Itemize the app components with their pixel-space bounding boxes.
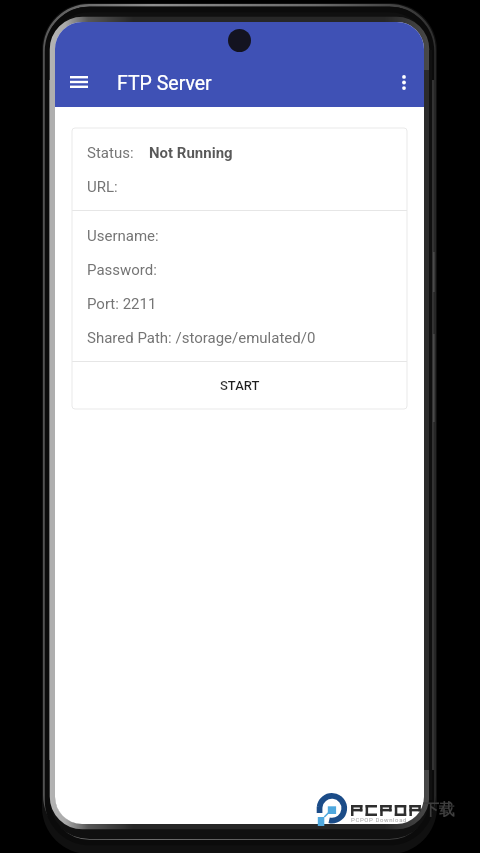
button[interactable]: Open navigation menu (59, 63, 99, 103)
staticText: 下载 (423, 800, 455, 820)
staticText: URL: (87, 178, 118, 196)
staticText: Shared Path: /storage/emulated/0 (87, 329, 316, 347)
staticText: Not Running (149, 144, 233, 162)
staticText: Username: (87, 227, 159, 245)
staticText: Status: (87, 144, 134, 162)
button[interactable]: START (72, 362, 407, 409)
staticText: START (220, 378, 260, 393)
staticText: Password: (87, 261, 157, 279)
staticText: PCPOP Download (351, 816, 407, 823)
staticText: Port: 2211 (87, 295, 157, 313)
staticText: FTP Server (117, 72, 212, 95)
button[interactable]: More options (384, 63, 424, 103)
